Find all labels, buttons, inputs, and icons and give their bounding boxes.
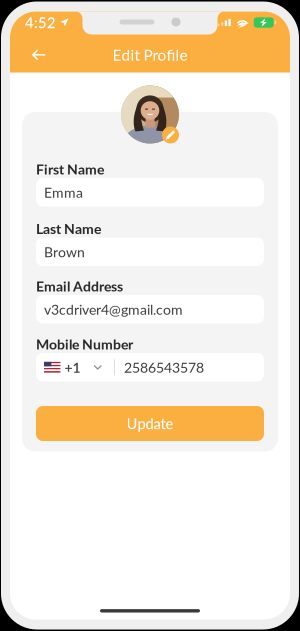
staticText: 4:52	[25, 14, 56, 31]
staticText: 2586543578	[124, 359, 204, 376]
staticText: v3cdriver4@gmail.com	[44, 301, 183, 318]
staticText: Last Name	[36, 220, 101, 237]
staticText: Update	[126, 415, 173, 432]
button[interactable]: Change profile photo	[121, 85, 179, 143]
staticText: Email Address	[36, 278, 123, 294]
button[interactable]: Back	[10, 39, 62, 70]
button[interactable]: Update	[36, 406, 264, 441]
staticText: +1	[64, 359, 80, 376]
staticText: Edit Profile	[112, 46, 187, 64]
staticText: First Name	[36, 161, 104, 177]
staticText: Brown	[44, 243, 85, 260]
staticText: Mobile Number	[36, 336, 133, 352]
staticText: Emma	[44, 184, 83, 201]
